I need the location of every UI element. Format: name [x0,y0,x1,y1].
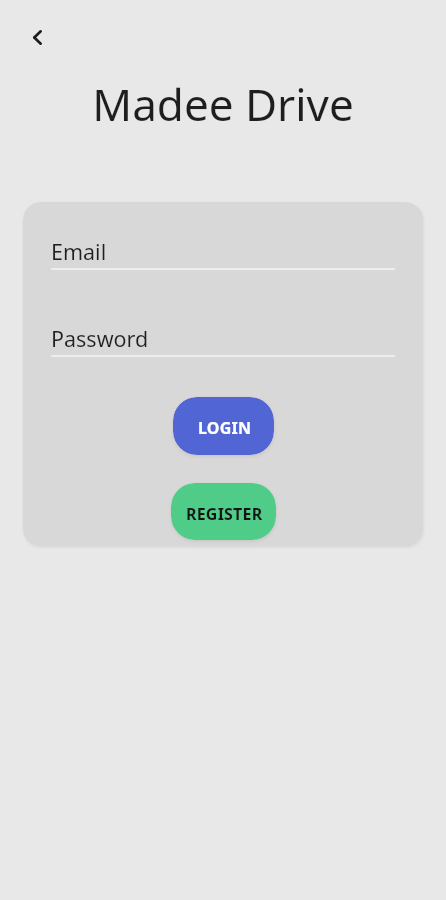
staticText: LOGIN [198,417,252,439]
staticText: Email [51,237,107,266]
staticText: Madee Drive [0,74,446,134]
button[interactable]: Password [51,314,395,357]
button[interactable]: REGISTER [171,483,276,540]
button[interactable]: LOGIN [173,397,274,455]
button[interactable]: Back [19,19,55,55]
button[interactable]: Email [51,227,395,270]
staticText: Password [51,324,149,353]
staticText: REGISTER [186,503,263,525]
